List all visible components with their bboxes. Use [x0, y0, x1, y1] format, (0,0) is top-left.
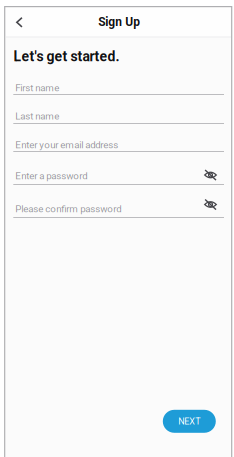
- staticText: NEXT: [178, 416, 200, 427]
- staticText: Enter a password: [15, 170, 87, 181]
- staticText: Last name: [15, 110, 59, 122]
- button[interactable]: Show confirm password: [197, 193, 223, 215]
- button[interactable]: NEXT: [163, 410, 216, 433]
- staticText: First name: [15, 82, 59, 93]
- staticText: Let's get started.: [14, 48, 120, 65]
- button[interactable]: Back: [6, 9, 32, 35]
- staticText: Please confirm password: [15, 203, 121, 214]
- staticText: Enter your email address: [15, 139, 118, 150]
- button[interactable]: Show password: [197, 164, 223, 186]
- staticText: Sign Up: [98, 15, 140, 29]
